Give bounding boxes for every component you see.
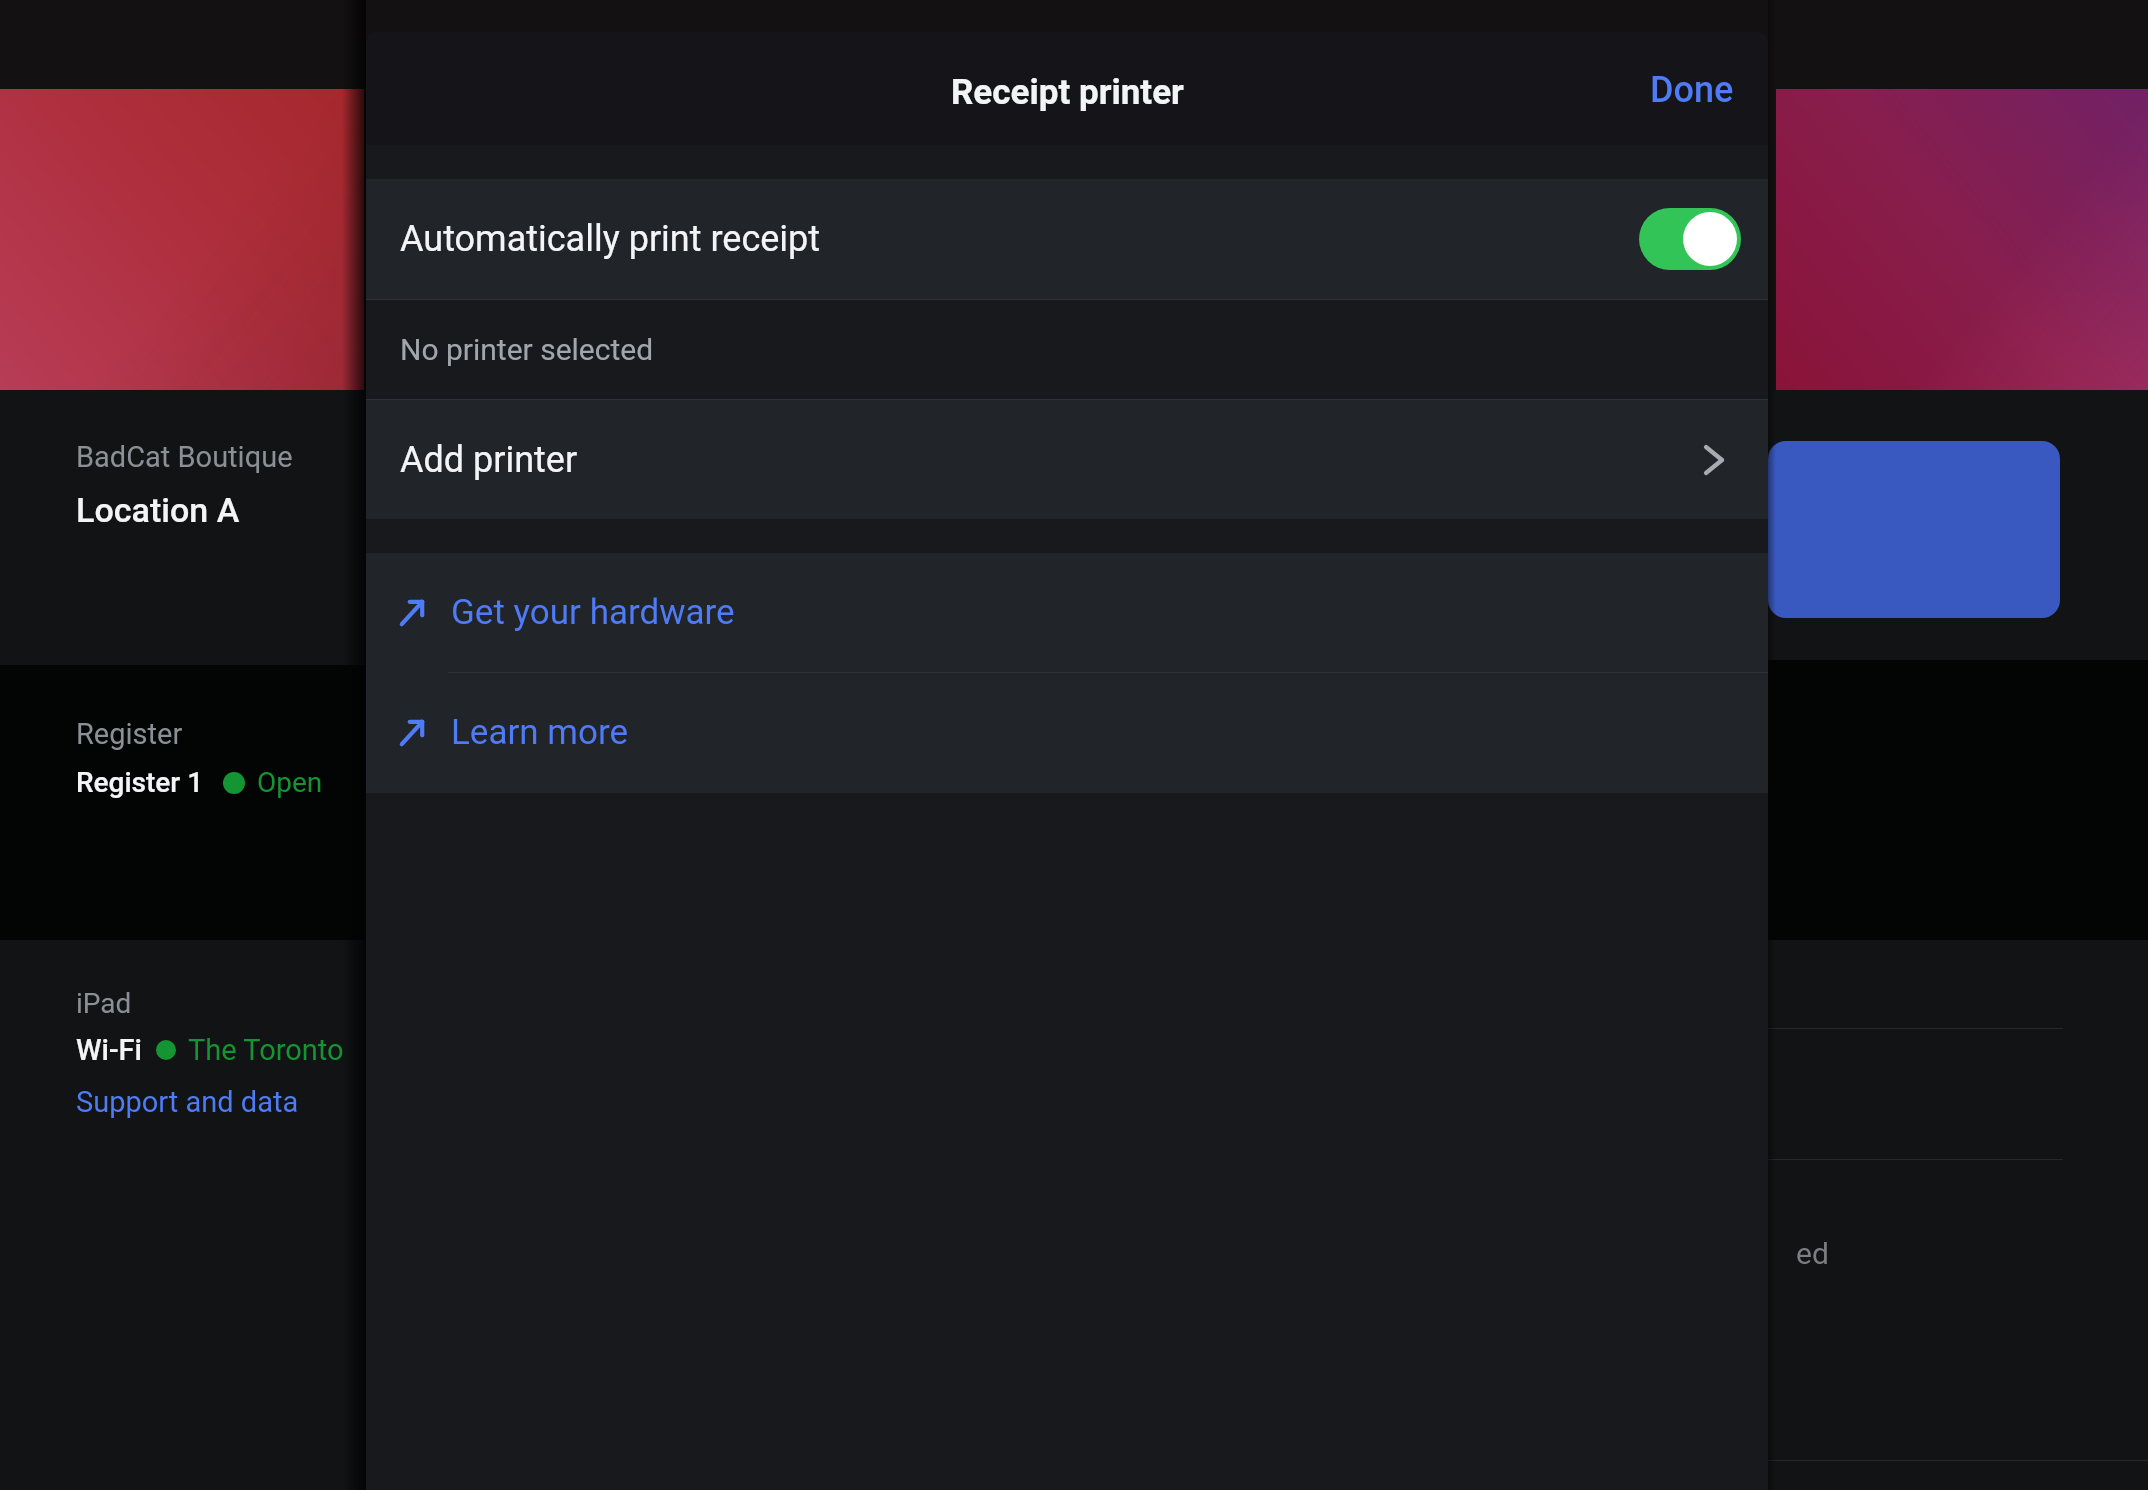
staticText: Support and data xyxy=(76,1085,299,1119)
staticText: Receipt printer xyxy=(951,72,1184,113)
staticText: Wi-Fi xyxy=(76,1033,142,1067)
staticText: Get your hardware xyxy=(451,592,735,633)
button[interactable]: Add printer xyxy=(366,400,1768,519)
button[interactable]: Done xyxy=(1616,44,1768,134)
staticText: BadCat Boutique xyxy=(76,440,293,474)
staticText: Register xyxy=(76,717,183,751)
button[interactable]: Automatically print receipt xyxy=(366,179,1768,299)
other: Open add printer xyxy=(1704,445,1724,475)
staticText: The Toronto 2 xyxy=(188,1033,366,1067)
staticText: iPad xyxy=(76,987,132,1020)
button[interactable]: Automatically print receipt toggle, on xyxy=(1639,208,1741,270)
staticText: Location A xyxy=(76,490,240,530)
staticText: Learn more xyxy=(451,712,629,753)
staticText: No printer selected xyxy=(400,332,654,367)
staticText: Add printer xyxy=(400,439,578,481)
button[interactable]: Get your hardware xyxy=(366,553,1768,672)
button[interactable]: Learn more xyxy=(366,673,1768,792)
staticText: ed xyxy=(1796,1236,1829,1271)
staticText: Open xyxy=(257,766,323,799)
staticText: Automatically print receipt xyxy=(400,218,821,260)
staticText: Done xyxy=(1650,69,1734,111)
staticText: Register 1 xyxy=(76,766,204,799)
